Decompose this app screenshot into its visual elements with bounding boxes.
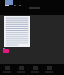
button[interactable]: Search <box>28 64 42 75</box>
button[interactable]: Home <box>0 64 14 75</box>
button[interactable]: Library <box>14 64 28 75</box>
button[interactable]: Highlight <box>3 49 9 53</box>
button[interactable]: More <box>42 64 56 75</box>
